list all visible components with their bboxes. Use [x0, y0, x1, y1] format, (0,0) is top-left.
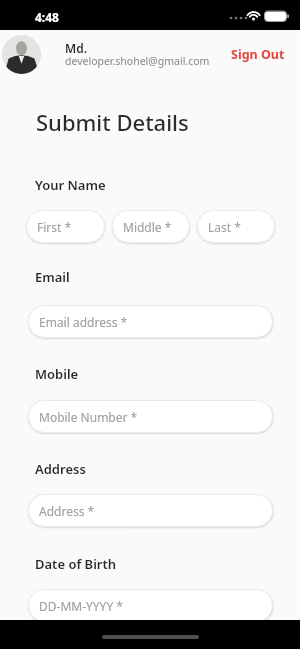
button[interactable]: First *	[26, 210, 105, 243]
staticText: Email	[35, 268, 70, 286]
staticText: Address *	[39, 503, 95, 519]
button[interactable]: DD-MM-YYYY *	[28, 589, 273, 622]
staticText: developer.shohel@gmail.com	[65, 54, 210, 68]
staticText: 4:48	[35, 9, 59, 25]
staticText: Email address *	[39, 314, 128, 330]
staticText: Md.	[65, 40, 87, 56]
staticText: Sign Out	[231, 46, 285, 63]
staticText: Last *	[208, 219, 241, 235]
button[interactable]: Middle *	[112, 210, 190, 243]
staticText: Submit Details	[36, 107, 189, 137]
staticText: Mobile Number *	[39, 409, 138, 425]
staticText: Mobile	[35, 365, 79, 383]
button[interactable]: Email address *	[28, 305, 273, 338]
staticText: DD-MM-YYYY *	[39, 598, 123, 614]
button[interactable]: Last *	[197, 210, 275, 243]
staticText: Middle *	[123, 219, 172, 235]
button[interactable]	[0, 30, 300, 79]
staticText: First *	[37, 219, 72, 235]
staticText: Your Name	[35, 176, 106, 194]
staticText: Address	[35, 460, 86, 478]
button[interactable]: Sign Out	[231, 46, 285, 63]
button[interactable]: Address *	[28, 494, 273, 527]
staticText: Date of Birth	[35, 555, 117, 573]
button[interactable]: Mobile Number *	[28, 400, 273, 433]
